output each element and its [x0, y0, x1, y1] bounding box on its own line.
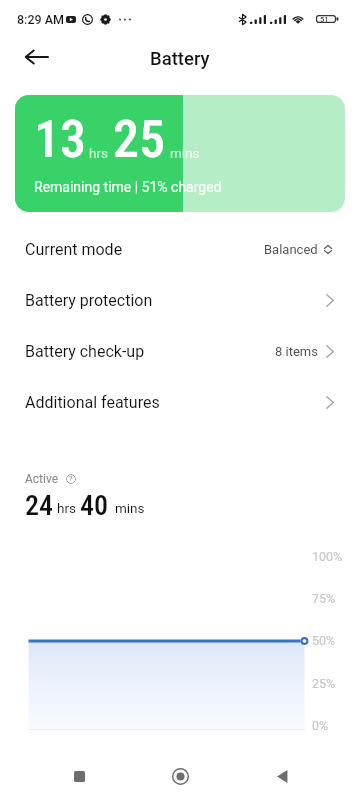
staticText: 51 [320, 15, 329, 24]
staticText: 25% [312, 676, 336, 691]
staticText: mins [115, 500, 145, 516]
staticText: 13 [34, 109, 87, 170]
staticText: Active [25, 472, 59, 486]
staticText: 0% [312, 718, 329, 733]
staticText: Current mode [25, 240, 123, 259]
staticText: Battery protection [25, 291, 153, 310]
staticText: 40 [80, 489, 109, 522]
staticText: Remaining time | 51% charged [34, 179, 222, 195]
staticText: 8:29 AM [17, 12, 65, 27]
button[interactable]: Battery check-up [0, 326, 360, 377]
staticText: Additional features [25, 393, 160, 412]
staticText: Battery check-up [25, 342, 145, 361]
staticText: 8 items [275, 344, 318, 359]
button[interactable]: Info [66, 474, 76, 484]
button[interactable]: Additional features [0, 377, 360, 428]
staticText: hrs [57, 500, 76, 516]
button[interactable]: 13 [15, 95, 345, 212]
staticText: 75% [312, 591, 336, 606]
button[interactable]: Recents [56, 753, 102, 799]
staticText: hrs [89, 145, 108, 161]
staticText: 24 [25, 489, 54, 522]
staticText: mins [170, 145, 200, 161]
staticText: 100% [312, 549, 343, 564]
staticText: Balanced [264, 242, 318, 257]
button[interactable]: Current mode [0, 224, 360, 275]
button[interactable]: Back [16, 37, 56, 77]
staticText: ? [69, 475, 73, 483]
button[interactable]: Battery protection [0, 275, 360, 326]
staticText: 25 [113, 109, 166, 170]
staticText: Battery [150, 48, 210, 70]
button[interactable]: Back [259, 753, 305, 799]
button[interactable]: Home [157, 753, 203, 799]
staticText: 50% [312, 633, 336, 648]
